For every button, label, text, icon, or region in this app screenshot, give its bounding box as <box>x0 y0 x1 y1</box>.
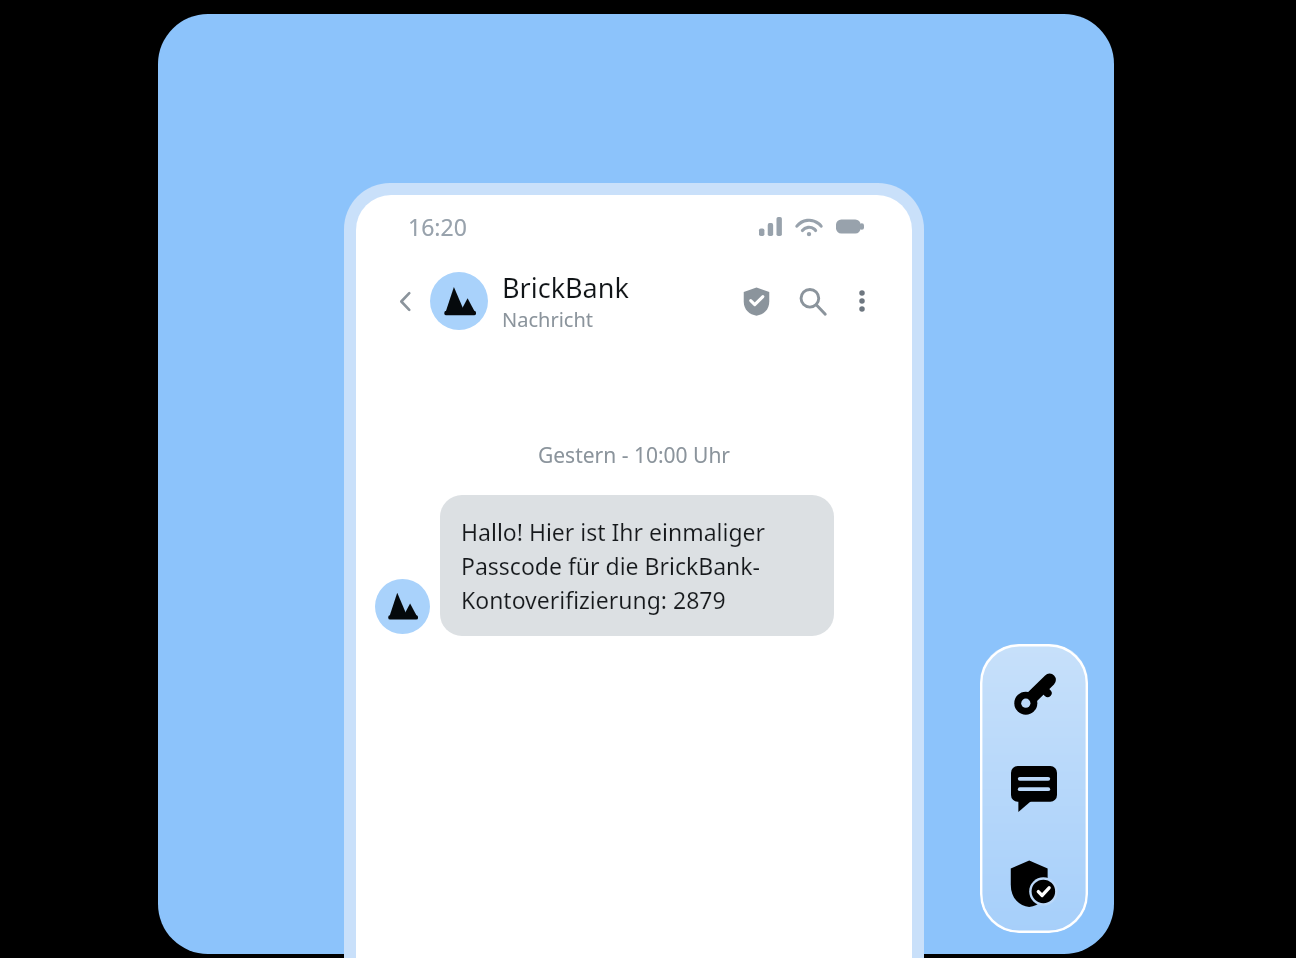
button[interactable]: Hallo! Hier ist Ihr einmaliger Passcode … <box>440 495 834 636</box>
button[interactable]: Verified sender <box>734 279 778 323</box>
staticText: Nachricht <box>502 306 593 333</box>
button[interactable]: BrickBank <box>430 269 629 333</box>
button[interactable]: Messages <box>1002 757 1066 821</box>
button[interactable]: Passcode <box>1002 662 1066 726</box>
button[interactable]: Security verified <box>1002 851 1066 915</box>
staticText: Gestern - 10:00 Uhr <box>356 441 912 470</box>
button[interactable]: Search <box>790 279 834 323</box>
staticText: Hallo! Hier ist Ihr einmaliger Passcode … <box>461 516 813 615</box>
button[interactable]: Back <box>386 282 424 320</box>
button[interactable]: More options <box>842 281 882 321</box>
staticText: 16:20 <box>408 211 467 242</box>
staticText: BrickBank <box>502 269 629 306</box>
